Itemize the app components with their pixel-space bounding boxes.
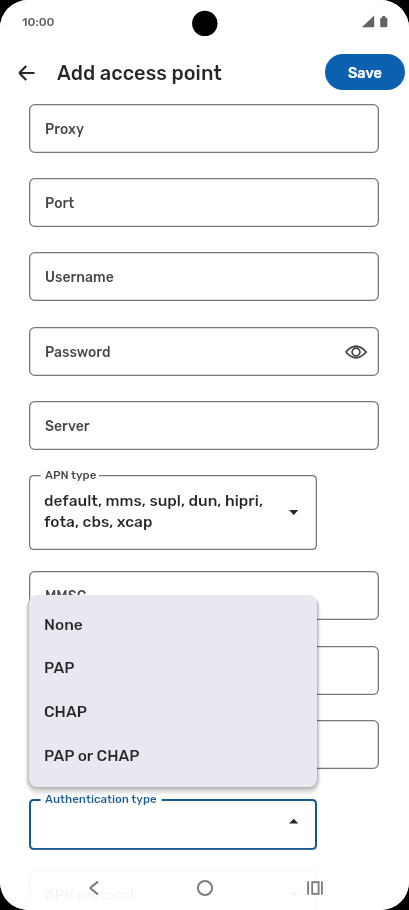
button[interactable]: Username [29,252,379,301]
button[interactable]: APN type [29,475,317,550]
button[interactable]: Show password [341,337,371,367]
staticText: Username [45,269,114,286]
button[interactable]: Password [29,327,379,376]
button[interactable]: PAP [29,646,317,690]
button[interactable]: Server [29,401,379,450]
button[interactable]: Recent apps [290,864,338,910]
staticText: PAP or CHAP [44,747,140,765]
staticText: Server [45,418,90,435]
button[interactable]: Authentication type [29,799,317,850]
staticText: Port [45,195,75,212]
staticText: Proxy [45,121,84,138]
staticText: None [44,616,83,634]
staticText: Authentication type [45,792,157,806]
button[interactable]: Port [29,178,379,227]
staticText: Add access point [57,61,222,85]
staticText: 10:00 [22,15,55,29]
staticText: default, mms, supl, dun, hipri, [44,492,263,510]
staticText: APN type [45,468,97,482]
button[interactable]: Back [70,864,118,910]
button[interactable] [29,720,379,769]
button[interactable]: PAP or CHAP [29,734,317,778]
button[interactable]: Navigate up [11,57,43,89]
staticText: CHAP [44,703,87,721]
staticText: PAP [44,659,75,677]
staticText: APN protocol [45,887,134,904]
staticText: Password [45,344,111,361]
button[interactable]: APN protocol [29,870,317,910]
staticText: Save [348,64,382,81]
staticText: fota, cbs, xcap [44,513,153,531]
staticText: MMSC [45,588,87,605]
button[interactable]: CHAP [29,690,317,734]
button[interactable] [29,646,379,695]
button[interactable]: Save [325,54,405,90]
button[interactable]: Proxy [29,104,379,153]
button[interactable]: None [29,603,317,647]
button[interactable]: Home [181,864,229,910]
button[interactable]: MMSC [29,571,379,620]
